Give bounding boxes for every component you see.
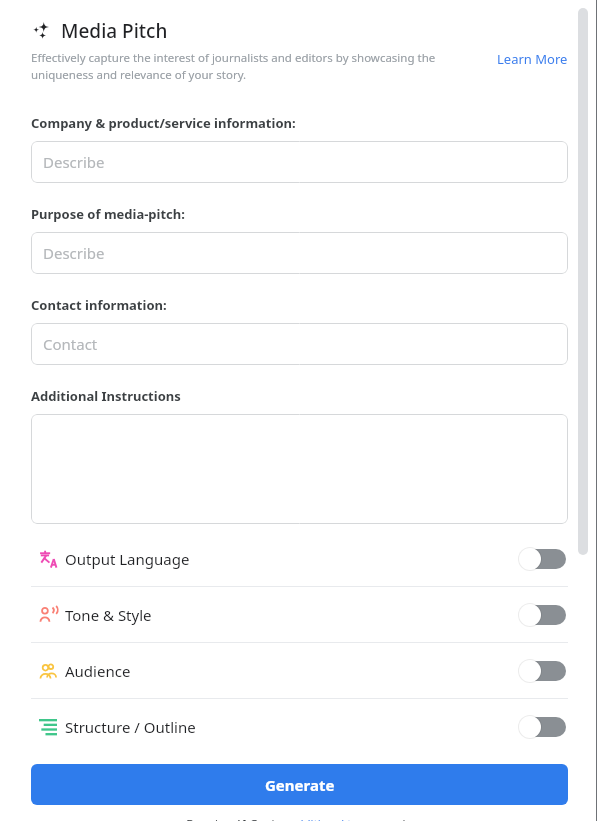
- button[interactable]: Describe: [31, 141, 568, 183]
- button[interactable]: [31, 414, 568, 524]
- staticText: Tone & Style: [65, 605, 152, 625]
- staticText: Contact information:: [31, 296, 167, 314]
- button[interactable]: Audience: [31, 643, 568, 698]
- staticText: By using AI Genius additional terms appl…: [186, 816, 414, 821]
- staticText: Describe: [43, 152, 105, 172]
- button[interactable]: Learn More: [497, 50, 568, 68]
- staticText: Describe: [43, 243, 105, 263]
- button[interactable]: Structure / Outline: [31, 699, 568, 754]
- staticText: Learn More: [497, 50, 568, 68]
- button[interactable]: Toggle: [518, 545, 568, 573]
- button[interactable]: Toggle: [518, 601, 568, 629]
- staticText: Output Language: [65, 549, 190, 569]
- staticText: Company & product/service information:: [31, 114, 296, 132]
- staticText: Additional Instructions: [31, 387, 181, 405]
- button[interactable]: Describe: [31, 232, 568, 274]
- staticText: Generate: [265, 775, 335, 795]
- staticText: Media Pitch: [61, 18, 168, 44]
- button[interactable]: Generate: [31, 764, 568, 805]
- button[interactable]: Toggle: [518, 657, 568, 685]
- staticText: Purpose of media-pitch:: [31, 205, 185, 223]
- button[interactable]: Output Language: [31, 531, 568, 586]
- staticText: Effectively capture the interest of jour…: [31, 50, 489, 82]
- button[interactable]: Toggle: [518, 713, 568, 741]
- button[interactable]: Tone & Style: [31, 587, 568, 642]
- staticText: Audience: [65, 661, 131, 681]
- button[interactable]: Contact: [31, 323, 568, 365]
- staticText: Contact: [43, 334, 98, 354]
- staticText: Structure / Outline: [65, 717, 196, 737]
